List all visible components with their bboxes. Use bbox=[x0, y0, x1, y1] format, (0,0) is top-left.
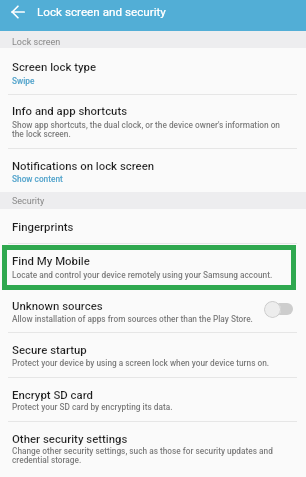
staticText: Encrypt SD card bbox=[12, 388, 306, 401]
button[interactable] bbox=[0, 290, 306, 332]
staticText: Locate and control your device remotely … bbox=[12, 270, 287, 280]
staticText: Notifications on lock screen bbox=[12, 159, 306, 172]
staticText: Lock screen bbox=[12, 37, 306, 48]
button[interactable] bbox=[0, 422, 306, 477]
staticText: Show content bbox=[12, 174, 306, 184]
staticText: Screen lock type bbox=[12, 60, 306, 73]
staticText: Protect your device by using a screen lo… bbox=[12, 358, 287, 368]
staticText: Protect your SD card by encrypting its d… bbox=[12, 402, 287, 412]
staticText: Allow installation of apps from sources … bbox=[12, 314, 260, 324]
staticText: Other security settings bbox=[12, 432, 306, 445]
staticText: Change other security settings, such as … bbox=[12, 446, 287, 465]
button[interactable]: Back bbox=[6, 0, 30, 23]
staticText: Security bbox=[12, 196, 306, 207]
button[interactable] bbox=[2, 245, 296, 290]
staticText: Secure startup bbox=[12, 343, 306, 356]
staticText: Fingerprints bbox=[12, 220, 306, 233]
button[interactable] bbox=[0, 149, 306, 192]
button[interactable] bbox=[0, 333, 306, 377]
staticText: Unknown sources bbox=[12, 299, 306, 312]
staticText: Lock screen and security bbox=[37, 5, 166, 19]
staticText: Swipe bbox=[12, 76, 306, 86]
button[interactable]: Unknown sources toggle bbox=[262, 298, 294, 320]
button[interactable] bbox=[0, 378, 306, 421]
staticText: Show app shortcuts, the dual clock, or t… bbox=[12, 120, 287, 139]
button[interactable] bbox=[0, 209, 306, 243]
button[interactable] bbox=[0, 48, 306, 94]
button[interactable] bbox=[0, 95, 306, 148]
staticText: Find My Mobile bbox=[12, 254, 306, 267]
staticText: Info and app shortcuts bbox=[12, 104, 306, 117]
